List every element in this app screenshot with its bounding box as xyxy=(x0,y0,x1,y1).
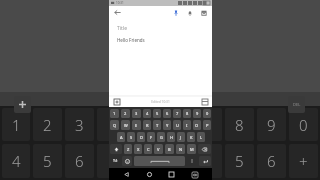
button[interactable] xyxy=(129,144,158,178)
button[interactable]: Add item xyxy=(112,97,121,106)
button[interactable]: Home xyxy=(144,169,155,180)
button[interactable] xyxy=(129,108,158,141)
button[interactable]: A xyxy=(117,132,125,142)
staticText: C xyxy=(147,147,150,152)
staticText: H xyxy=(170,135,173,140)
button[interactable]: 5 xyxy=(225,144,254,178)
button[interactable]: M xyxy=(187,144,196,154)
button[interactable]: B xyxy=(165,144,174,154)
button[interactable]: More options xyxy=(200,97,209,106)
button[interactable]: C xyxy=(144,144,152,154)
staticText: M xyxy=(190,147,194,152)
button[interactable] xyxy=(97,108,126,141)
button[interactable]: 0 xyxy=(203,109,211,118)
button[interactable]: 8 xyxy=(183,109,191,118)
button[interactable]: Enter xyxy=(199,156,211,166)
button[interactable]: Pin xyxy=(170,7,181,18)
button[interactable]: 8 xyxy=(225,108,254,141)
staticText: 9 xyxy=(196,111,199,116)
button[interactable]: H xyxy=(167,132,175,142)
button[interactable]: F xyxy=(147,132,155,142)
staticText: Edited 10:31 xyxy=(151,100,170,104)
button[interactable]: 4 xyxy=(143,109,151,118)
button[interactable]: N xyxy=(176,144,185,154)
button[interactable] xyxy=(161,108,190,141)
button[interactable]: Space xyxy=(134,156,185,166)
staticText: !?# xyxy=(113,159,118,163)
button[interactable]: 3 xyxy=(132,109,141,118)
staticText: Hello Friends xyxy=(117,37,145,43)
button[interactable]: Back xyxy=(112,7,123,18)
button[interactable]: K xyxy=(187,132,195,142)
button[interactable]: D xyxy=(137,132,145,142)
button[interactable]: 6 xyxy=(163,109,171,118)
button[interactable]: 3 xyxy=(65,108,94,141)
button[interactable]: Y xyxy=(163,120,171,130)
button[interactable]: G xyxy=(157,132,165,142)
button[interactable]: Title xyxy=(109,19,212,96)
button[interactable]: U xyxy=(173,120,181,130)
staticText: N xyxy=(179,147,183,152)
staticText: V xyxy=(157,147,160,152)
button[interactable]: Backspace xyxy=(198,144,211,154)
button[interactable] xyxy=(193,144,222,178)
button[interactable]: E xyxy=(132,120,141,130)
button[interactable]: + xyxy=(289,144,318,178)
staticText: 1 xyxy=(113,111,116,116)
button[interactable]: P xyxy=(203,120,211,130)
button[interactable]: X xyxy=(134,144,142,154)
button[interactable]: 2 xyxy=(33,108,62,141)
button[interactable]: Recents xyxy=(166,169,177,180)
staticText: K xyxy=(190,135,193,140)
button[interactable] xyxy=(161,144,190,178)
button[interactable]: Z xyxy=(124,144,132,154)
button[interactable]: Emoji xyxy=(122,156,132,166)
button[interactable]: 1 xyxy=(2,108,30,141)
staticText: 5 xyxy=(235,151,244,171)
button[interactable]: Q xyxy=(110,120,119,130)
button[interactable]: 2 xyxy=(121,109,130,118)
button[interactable] xyxy=(193,108,222,141)
staticText: DEL xyxy=(293,102,301,107)
button[interactable]: 5 xyxy=(153,109,161,118)
button[interactable]: 0 xyxy=(289,108,318,141)
button[interactable]: R xyxy=(143,120,151,130)
button[interactable]: 5 xyxy=(33,144,62,178)
button[interactable]: 6 xyxy=(257,144,286,178)
button[interactable]: 6 xyxy=(65,144,94,178)
staticText: R xyxy=(146,123,149,128)
button[interactable]: J xyxy=(177,132,185,142)
button[interactable]: Back xyxy=(121,169,132,180)
button[interactable]: Screenshot xyxy=(189,169,200,180)
button[interactable]: 7 xyxy=(173,109,181,118)
staticText: W xyxy=(124,123,128,128)
button[interactable]: Archive xyxy=(198,7,209,18)
staticText: 0 xyxy=(206,111,209,116)
button[interactable]: Delete xyxy=(288,96,305,113)
staticText: 1 xyxy=(12,115,21,135)
button[interactable]: L xyxy=(197,132,205,142)
button[interactable]: 4 xyxy=(2,144,30,178)
button[interactable]: V xyxy=(154,144,163,154)
button[interactable]: I xyxy=(183,120,191,130)
button[interactable]: S xyxy=(127,132,135,142)
button[interactable]: W xyxy=(121,120,130,130)
staticText: 2 xyxy=(43,115,52,135)
staticText: 8 xyxy=(186,111,189,116)
button[interactable]: 9 xyxy=(257,108,286,141)
button[interactable]: 1 xyxy=(110,109,119,118)
button[interactable]: 9 xyxy=(193,109,201,118)
staticText: B xyxy=(168,147,171,152)
staticText: 3 xyxy=(135,111,138,116)
button[interactable]: T xyxy=(153,120,161,130)
button[interactable]: O xyxy=(193,120,201,130)
button[interactable]: Shift xyxy=(110,144,122,154)
button[interactable]: Cursor xyxy=(187,156,197,166)
button[interactable]: Add xyxy=(14,96,31,113)
button[interactable]: Symbols xyxy=(110,156,120,166)
button[interactable]: Reminder xyxy=(184,7,195,18)
staticText: 2 xyxy=(124,111,127,116)
staticText: 3 xyxy=(75,115,84,135)
button[interactable] xyxy=(97,144,126,178)
staticText: 5 xyxy=(156,111,159,116)
